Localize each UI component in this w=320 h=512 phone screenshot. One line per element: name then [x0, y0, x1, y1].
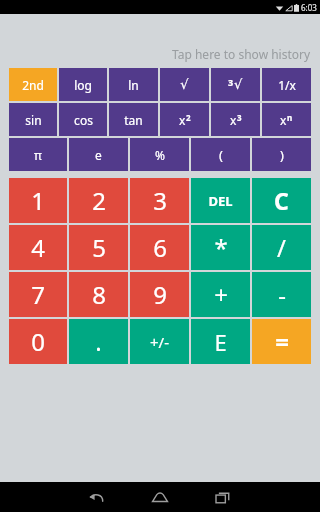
button[interactable]: Home [142, 482, 178, 512]
button[interactable]: cos [59, 103, 107, 136]
staticText: 8 [92, 278, 106, 311]
staticText: ( [219, 146, 223, 164]
staticText: ) [280, 146, 284, 164]
button[interactable]: 5 [69, 225, 128, 270]
button[interactable]: ) [252, 138, 311, 171]
staticText: E [214, 327, 227, 357]
button[interactable]: e [69, 138, 128, 171]
staticText: = [275, 325, 289, 358]
staticText: e [95, 147, 102, 163]
staticText: +/- [150, 332, 169, 352]
button[interactable]: . [69, 319, 128, 364]
button[interactable]: 6 [130, 225, 189, 270]
staticText: sin [25, 112, 42, 128]
button[interactable]: ln [109, 68, 158, 101]
staticText: 2nd [22, 77, 44, 93]
staticText: Tap here to show history [172, 46, 311, 62]
staticText: ln [128, 77, 139, 93]
staticText: n [287, 112, 293, 123]
button[interactable]: - [252, 272, 311, 317]
button[interactable]: * [191, 225, 250, 270]
button[interactable]: x [211, 103, 260, 136]
staticText: √ [180, 77, 189, 92]
button[interactable]: 2 [69, 178, 128, 223]
button[interactable]: DEL [191, 178, 250, 223]
staticText: DEL [208, 192, 233, 210]
staticText: + [214, 278, 228, 311]
button[interactable]: 4 [9, 225, 67, 270]
button[interactable]: 1/x [262, 68, 311, 101]
button[interactable]: Tap here to show history [0, 14, 320, 68]
button[interactable]: + [191, 272, 250, 317]
staticText: x [280, 112, 287, 128]
button[interactable]: 3 [211, 68, 260, 101]
button[interactable]: C [252, 178, 311, 223]
staticText: √ [234, 77, 243, 92]
button[interactable]: = [252, 319, 311, 364]
staticText: 5 [92, 231, 106, 264]
button[interactable]: ( [191, 138, 250, 171]
staticText: 4 [31, 231, 45, 264]
staticText: . [95, 325, 102, 358]
button[interactable]: sin [9, 103, 57, 136]
button[interactable]: 8 [69, 272, 128, 317]
staticText: 3 [153, 184, 167, 217]
button[interactable]: Back [78, 482, 114, 512]
button[interactable]: 9 [130, 272, 189, 317]
staticText: / [277, 231, 286, 264]
staticText: * [214, 231, 228, 264]
button[interactable]: 1 [9, 178, 67, 223]
button[interactable]: E [191, 319, 250, 364]
button[interactable]: log [59, 68, 107, 101]
staticText: x [230, 112, 237, 128]
staticText: tan [124, 112, 143, 128]
staticText: 2 [186, 112, 191, 123]
staticText: π [34, 147, 42, 163]
staticText: 6:03 [301, 2, 317, 13]
staticText: 1 [31, 184, 45, 217]
staticText: log [74, 77, 92, 93]
button[interactable]: x [160, 103, 209, 136]
staticText: 7 [31, 278, 45, 311]
button[interactable]: √ [160, 68, 209, 101]
staticText: - [278, 278, 286, 311]
button[interactable]: 0 [9, 319, 67, 364]
staticText: 0 [31, 325, 45, 358]
button[interactable]: 2nd [9, 68, 57, 101]
button[interactable]: Recent apps [204, 482, 240, 512]
staticText: x [179, 112, 186, 128]
staticText: 1/x [278, 77, 296, 93]
staticText: C [274, 185, 289, 216]
staticText: 2 [92, 184, 106, 217]
button[interactable]: +/- [130, 319, 189, 364]
staticText: % [155, 147, 165, 163]
button[interactable]: x [262, 103, 311, 136]
button[interactable]: tan [109, 103, 158, 136]
staticText: 3 [237, 112, 242, 123]
button[interactable]: 7 [9, 272, 67, 317]
staticText: cos [74, 112, 93, 128]
staticText: 6 [153, 231, 167, 264]
staticText: 3 [228, 76, 234, 88]
staticText: 9 [153, 278, 167, 311]
button[interactable]: π [9, 138, 67, 171]
button[interactable]: % [130, 138, 189, 171]
button[interactable]: 3 [130, 178, 189, 223]
button[interactable]: / [252, 225, 311, 270]
